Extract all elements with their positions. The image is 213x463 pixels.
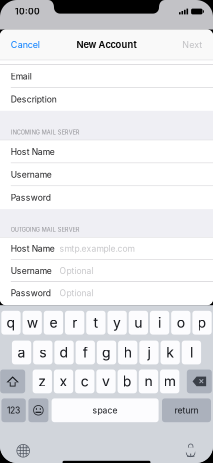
button[interactable]: u [129,311,148,335]
button[interactable]: v [96,369,116,393]
button[interactable]: s [33,341,52,364]
button[interactable]: t [86,311,105,335]
staticText: y [113,314,121,331]
button[interactable]: Emoji [28,398,48,422]
staticText: Optional [59,266,93,276]
staticText: return [174,405,198,415]
staticText: INCOMING MAIL SERVER [11,129,80,136]
staticText: l [190,344,193,361]
staticText: z [38,373,46,390]
staticText: s [39,344,46,361]
button[interactable]: n [139,369,158,393]
button[interactable]: Next [174,33,202,56]
button[interactable]: w [22,311,42,335]
button[interactable]: Description [0,88,213,111]
button[interactable]: Password [0,282,213,304]
button[interactable]: y [107,311,127,335]
staticText: p [197,314,206,331]
button[interactable]: d [54,341,74,364]
button[interactable]: a [12,341,31,364]
button[interactable]: Email [0,65,213,88]
button[interactable]: Password [0,186,213,209]
button[interactable]: x [54,369,73,393]
staticText: i [158,314,161,331]
button[interactable]: space [52,398,159,422]
staticText: w [27,314,38,331]
button[interactable]: return [162,398,211,422]
button[interactable]: b [118,369,137,393]
staticText: f [83,344,88,361]
button[interactable]: g [97,341,116,364]
staticText: Next [182,39,202,50]
staticText: Host Name [11,147,55,157]
staticText: Email [11,71,32,82]
button[interactable]: o [171,311,190,335]
button[interactable]: Host Name [0,238,213,260]
button[interactable]: z [33,369,52,393]
staticText: k [166,344,174,361]
staticText: space [93,405,118,415]
staticText: Host Name [11,243,55,254]
staticText: g [102,344,111,361]
button[interactable]: k [160,341,180,364]
button[interactable]: Next keyboard [16,444,30,457]
staticText: e [49,314,57,331]
staticText: h [124,344,132,361]
staticText: Optional [59,288,93,298]
button[interactable]: i [150,311,169,335]
staticText: n [144,373,152,390]
staticText: v [102,373,110,390]
button[interactable]: Username [0,163,213,186]
button[interactable]: Host Name [0,140,213,163]
button[interactable]: Username [0,260,213,282]
staticText: a [18,344,26,361]
staticText: Username [11,170,52,180]
button[interactable]: h [118,341,137,364]
button[interactable]: Dictate [185,444,196,458]
staticText: u [134,314,142,331]
staticText: Password [11,288,51,298]
staticText: o [177,314,185,331]
staticText: Description [11,94,57,104]
staticText: m [164,373,176,390]
staticText: b [123,373,132,390]
staticText: x [59,373,67,390]
staticText: q [6,314,15,331]
staticText: New Account [76,39,136,50]
staticText: OUTGOING MAIL SERVER [11,226,80,233]
button[interactable]: q [1,311,21,335]
button[interactable]: Shift [0,369,25,393]
staticText: r [72,314,77,331]
button[interactable]: j [139,341,159,364]
button[interactable]: l [182,341,201,364]
staticText: d [59,344,68,361]
staticText: c [81,373,89,390]
staticText: j [147,344,150,361]
button[interactable]: e [44,311,63,335]
button[interactable]: m [160,369,179,393]
staticText: t [93,314,98,331]
button[interactable]: r [65,311,84,335]
staticText: Password [11,192,51,203]
button[interactable]: c [75,369,94,393]
staticText: 10:00 [15,6,40,17]
button[interactable]: f [76,341,95,364]
staticText: Cancel [11,39,40,50]
staticText: Username [11,266,52,276]
button[interactable]: Cancel [11,33,48,56]
staticText: 123 [7,405,20,415]
button[interactable]: p [192,311,212,335]
button[interactable]: Numbers [1,398,26,422]
button[interactable]: Delete [187,369,212,393]
staticText: smtp.example.com [59,243,134,254]
